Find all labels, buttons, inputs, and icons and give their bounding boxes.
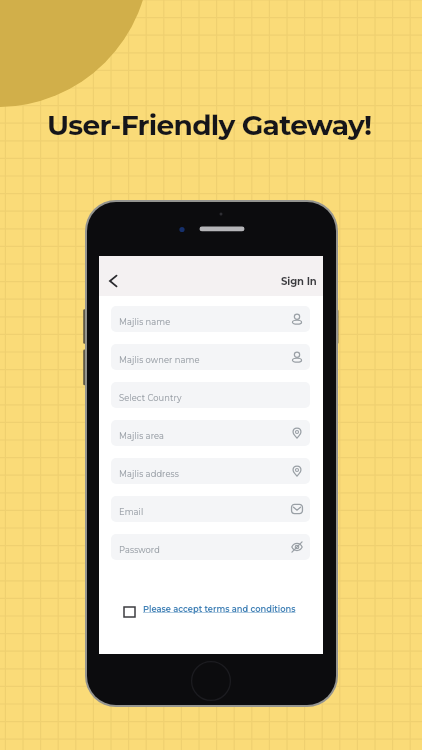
staticText: Please accept terms and conditions: [143, 604, 296, 614]
staticText: User-Friendly Gateway!: [47, 108, 372, 142]
button[interactable]: Back: [99, 265, 126, 296]
button[interactable]: Sign In: [281, 275, 317, 287]
button[interactable]: Majlis address: [111, 458, 310, 484]
staticText: Email: [119, 507, 144, 517]
staticText: Sign In: [281, 275, 317, 287]
staticText: Majlis address: [119, 469, 179, 479]
button[interactable]: Select Country: [111, 382, 310, 408]
button[interactable]: Please accept terms and conditions: [124, 606, 296, 616]
staticText: Password: [119, 545, 160, 555]
button[interactable]: Email: [111, 496, 310, 522]
button[interactable]: Majlis name: [111, 306, 310, 332]
staticText: Majlis name: [119, 317, 171, 327]
button[interactable]: Majlis owner name: [111, 344, 310, 370]
staticText: Majlis owner name: [119, 355, 200, 365]
staticText: Select Country: [119, 393, 182, 403]
button[interactable]: Majlis area: [111, 420, 310, 446]
button[interactable]: Password: [111, 534, 310, 560]
staticText: Majlis area: [119, 431, 164, 441]
